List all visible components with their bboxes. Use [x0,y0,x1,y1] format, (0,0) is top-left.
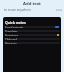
button[interactable]: Signatures [4,34,60,36]
staticText: Shortcuts [5,42,59,44]
staticText: Signatures [5,34,57,36]
staticText: Quick notes [5,20,26,25]
button[interactable]: Templates [4,30,60,32]
staticText: Templates [5,30,59,32]
staticText: Clipboard [5,38,59,40]
staticText: Add text [0,1,64,7]
staticText: to reuse anywhere [4,8,56,12]
button[interactable]: Shortcuts [4,42,60,44]
staticText: Saved snippets [5,26,55,28]
button[interactable]: Saved snippets [4,26,60,28]
button[interactable]: More options [56,8,62,12]
button[interactable]: Clipboard [4,38,60,40]
